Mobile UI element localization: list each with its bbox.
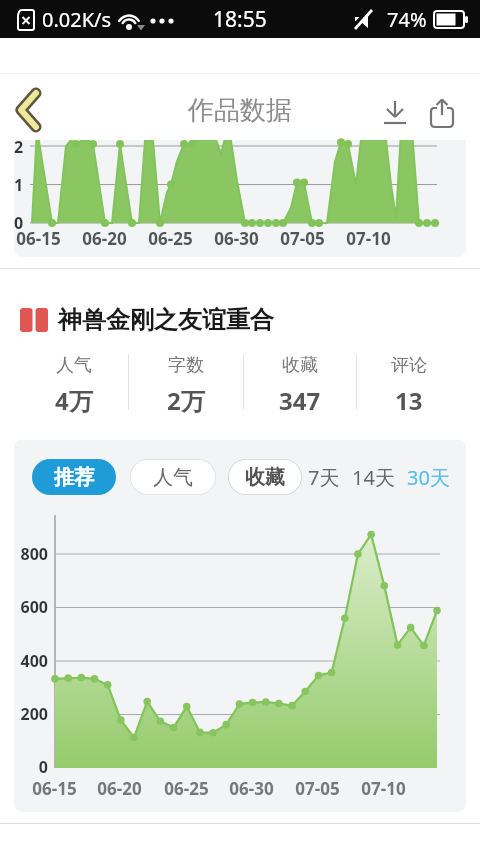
staticText: 字数 — [168, 354, 204, 377]
staticText: 评论 — [391, 354, 427, 377]
staticText: 作品数据 — [188, 94, 292, 127]
staticText: 人气 — [56, 354, 92, 377]
staticText: 74% — [387, 6, 427, 33]
staticText: 06-15 — [16, 227, 61, 250]
staticText: 30天 — [407, 464, 450, 491]
staticText: 0.02K/s — [42, 6, 112, 33]
button[interactable] — [373, 90, 417, 138]
button[interactable]: 人气 — [130, 459, 216, 495]
staticText: 07-10 — [361, 777, 406, 800]
button[interactable] — [420, 90, 464, 138]
button[interactable]: 推荐 — [32, 459, 116, 495]
button[interactable]: 评论 — [357, 354, 460, 417]
staticText: 14天 — [352, 464, 395, 491]
staticText: 18:55 — [213, 5, 267, 34]
staticText: 06-25 — [164, 777, 209, 800]
staticText: 0 — [14, 212, 24, 234]
staticText: 06-15 — [32, 777, 77, 800]
staticText: 2 — [14, 136, 24, 158]
staticText: 06-20 — [82, 227, 127, 250]
button[interactable]: 收藏 — [244, 354, 356, 417]
staticText: 神兽金刚之友谊重合 — [58, 305, 274, 335]
staticText: 13 — [395, 384, 423, 417]
staticText: 收藏 — [245, 465, 285, 490]
staticText: 7天 — [308, 464, 340, 491]
button[interactable]: 字数 — [129, 354, 243, 417]
staticText: 2万 — [167, 384, 205, 417]
button[interactable]: 人气 — [20, 354, 128, 417]
staticText: 人气 — [153, 465, 193, 490]
staticText: 07-10 — [346, 227, 391, 250]
button[interactable] — [0, 80, 56, 140]
staticText: 06-20 — [97, 777, 142, 800]
staticText: 200 — [20, 703, 48, 725]
staticText: 06-30 — [229, 777, 274, 800]
staticText: 4万 — [55, 384, 93, 417]
staticText: 800 — [20, 543, 48, 565]
staticText: 收藏 — [282, 354, 318, 377]
button[interactable]: 7天 — [304, 457, 344, 497]
staticText: 07-05 — [295, 777, 340, 800]
button[interactable]: 14天 — [348, 457, 399, 497]
staticText: 600 — [20, 596, 48, 618]
staticText: 0 — [38, 756, 48, 778]
button[interactable]: 神兽金刚之友谊重合 — [20, 305, 274, 335]
staticText: 400 — [20, 650, 48, 672]
button[interactable]: 收藏 — [228, 459, 302, 495]
staticText: 06-30 — [214, 227, 259, 250]
staticText: 347 — [279, 384, 321, 417]
button[interactable]: 30天 — [403, 457, 454, 497]
staticText: 06-25 — [148, 227, 193, 250]
staticText: 1 — [14, 174, 24, 196]
staticText: 推荐 — [54, 465, 94, 490]
staticText: 07-05 — [280, 227, 325, 250]
